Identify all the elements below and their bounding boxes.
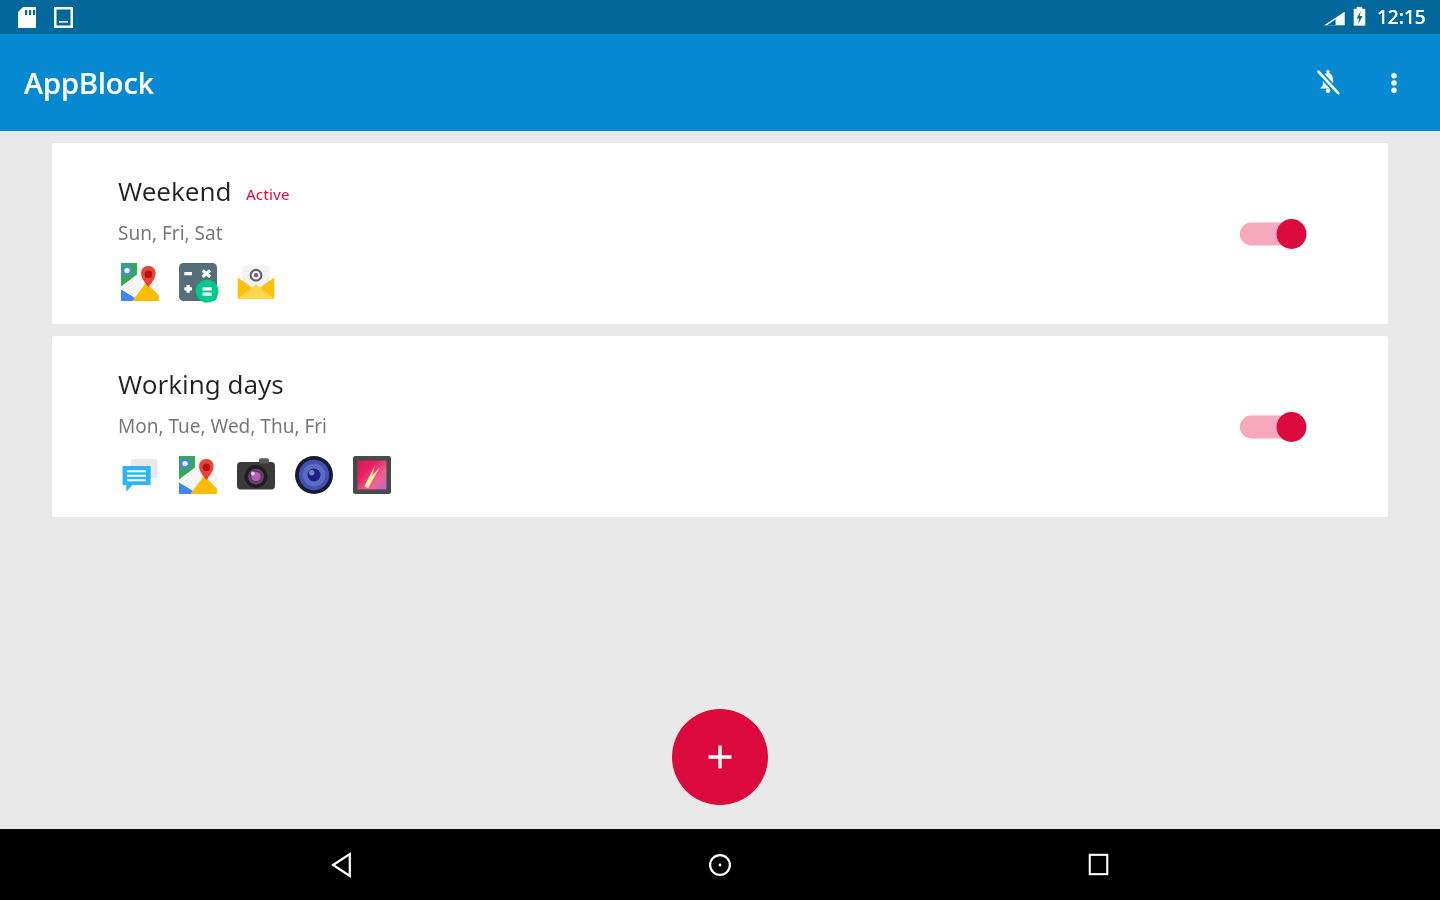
- button[interactable]: More options: [1366, 55, 1422, 111]
- staticText: AppBlock: [24, 63, 154, 102]
- button[interactable]: Toggle schedule: [1236, 212, 1312, 256]
- staticText: Weekend: [118, 173, 232, 208]
- button[interactable]: Recents: [1062, 829, 1134, 900]
- button[interactable]: Working days: [52, 336, 1388, 517]
- button[interactable]: Mute notifications: [1300, 55, 1356, 111]
- button[interactable]: Home: [684, 829, 756, 900]
- button[interactable]: Toggle schedule: [1236, 405, 1312, 449]
- staticText: Active: [246, 184, 290, 204]
- staticText: Mon, Tue, Wed, Thu, Fri: [118, 413, 328, 439]
- staticText: Working days: [118, 366, 284, 401]
- staticText: 12:15: [1377, 4, 1426, 30]
- button[interactable]: Add schedule: [672, 709, 768, 805]
- button[interactable]: Weekend: [52, 143, 1388, 324]
- staticText: Sun, Fri, Sat: [118, 220, 223, 246]
- button[interactable]: Back: [306, 829, 378, 900]
